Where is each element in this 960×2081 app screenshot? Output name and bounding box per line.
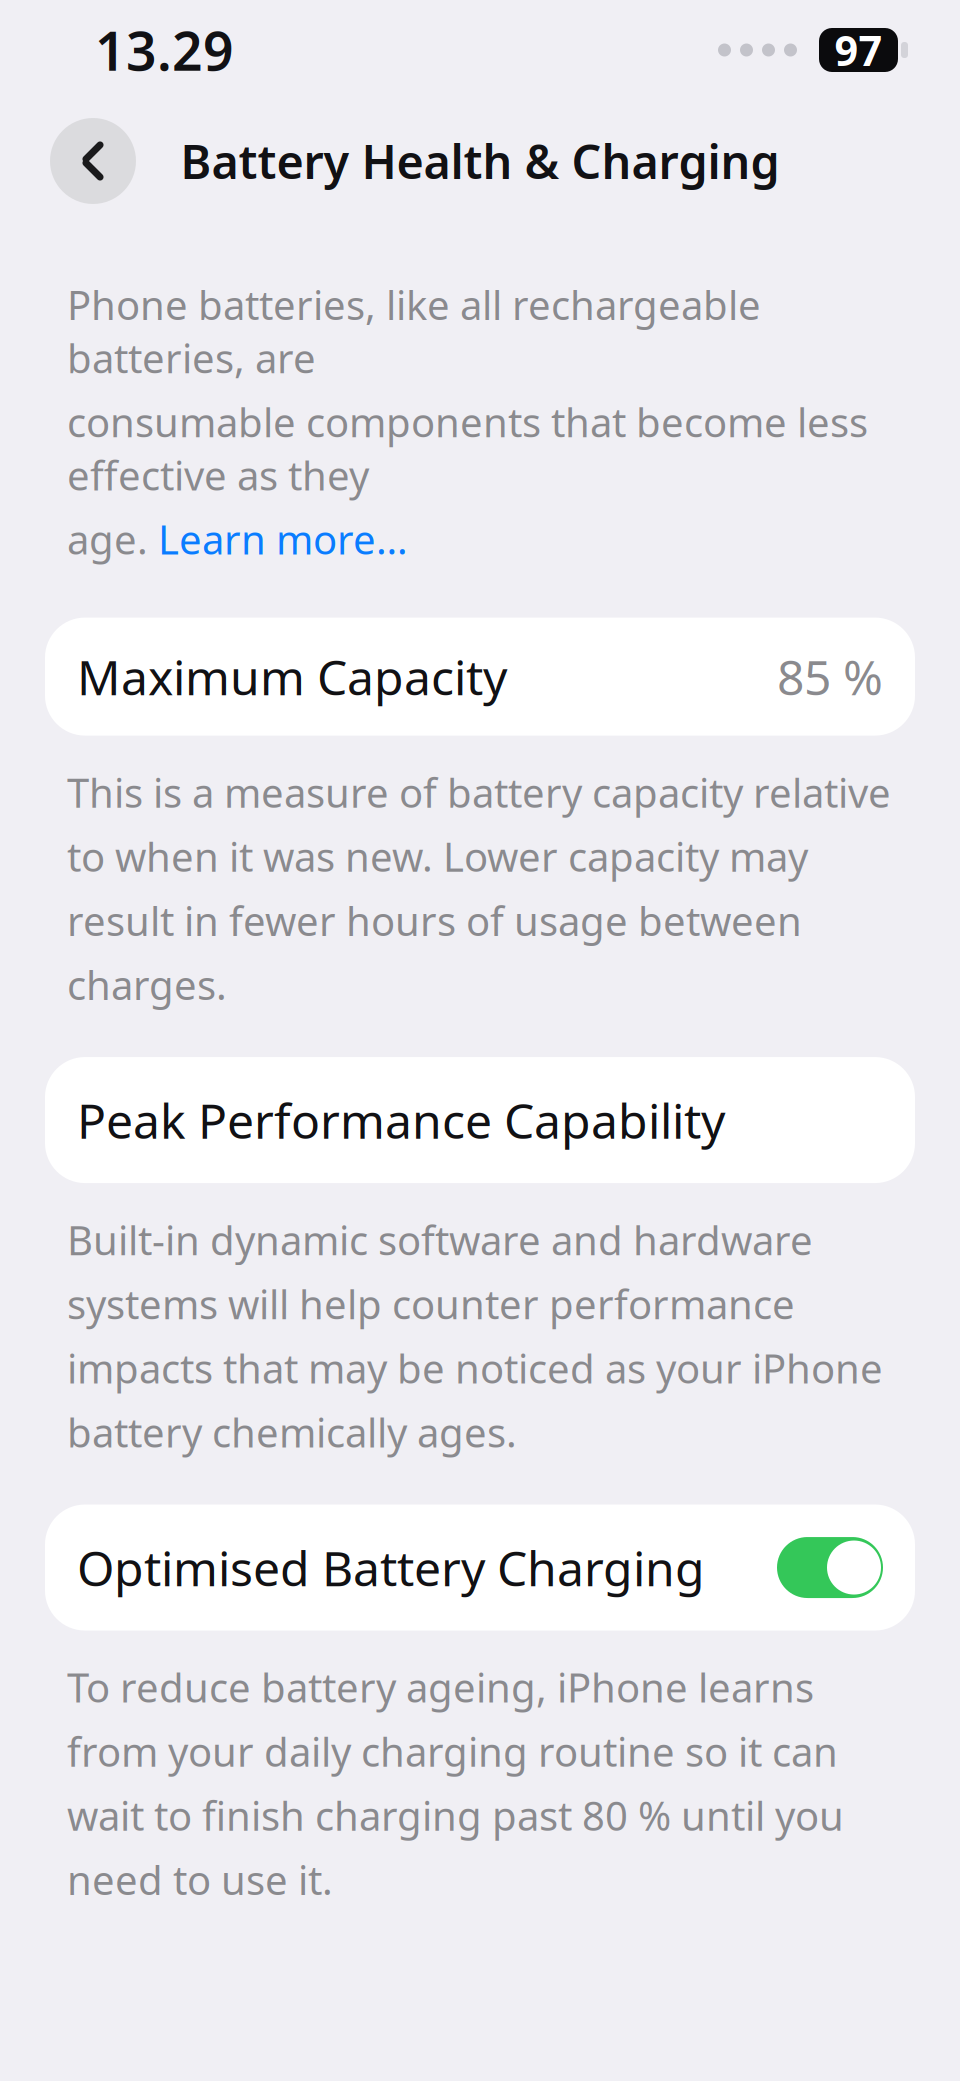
staticText: consumable components that become less e… [67, 395, 868, 501]
button[interactable]: Maximum Capacity [45, 618, 915, 736]
button[interactable]: Back [50, 118, 136, 204]
button[interactable]: Peak Performance Capability [45, 1057, 915, 1183]
staticText: Learn more… [158, 512, 408, 566]
staticText: age. [67, 512, 158, 566]
staticText: 85 % [777, 645, 883, 708]
staticText: Maximum Capacity [77, 645, 507, 708]
staticText: To reduce battery ageing, iPhone learns … [67, 1660, 844, 1906]
button[interactable]: Learn more… [158, 512, 408, 566]
staticText: This is a measure of battery capacity re… [67, 766, 891, 1011]
staticText: Optimised Battery Charging [77, 1536, 705, 1599]
staticText: 97 [834, 23, 882, 77]
staticText: Battery Health & Charging [180, 130, 779, 192]
staticText: 13.29 [95, 15, 234, 85]
button[interactable]: Optimised Battery Charging [45, 1504, 915, 1630]
staticText: Built-in dynamic software and hardware s… [67, 1213, 883, 1459]
staticText: Phone batteries, like all rechargeable b… [67, 278, 761, 384]
staticText: Peak Performance Capability [77, 1088, 725, 1152]
